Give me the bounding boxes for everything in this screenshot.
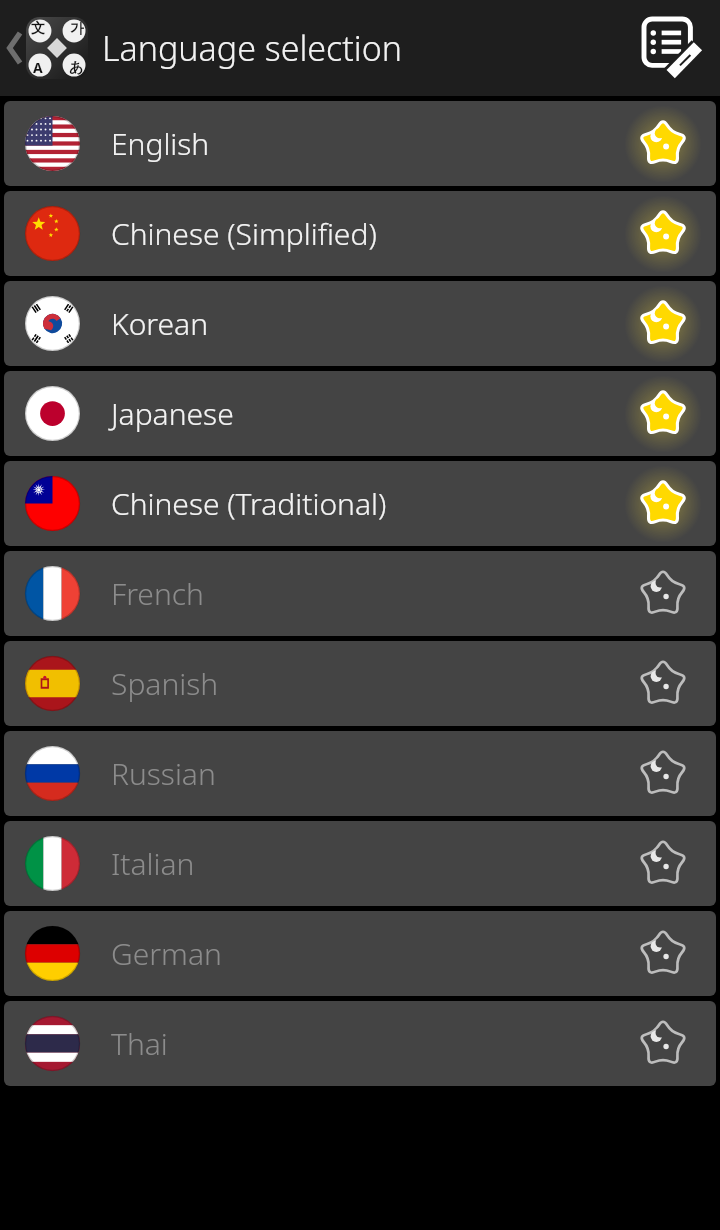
staticText: あ [69,59,84,77]
other: Favorite off [635,1016,716,1072]
button[interactable]: Spanish [4,641,716,726]
button[interactable]: Edit list [626,3,720,93]
staticText: Language selection [102,25,626,71]
staticText: Japanese [111,393,635,434]
other: Favorite on [635,296,716,352]
button[interactable]: Russian [4,731,716,816]
button[interactable]: Korean [4,281,716,366]
other: Favorite off [635,656,716,712]
other: Favorite on [635,116,716,172]
button[interactable]: French [4,551,716,636]
staticText: Spanish [111,663,635,704]
staticText: 가 [70,20,84,38]
other: Favorite off [635,746,716,802]
staticText: Thai [111,1023,635,1064]
staticText: Korean [111,303,635,344]
staticText: Chinese (Simplified) [111,213,635,254]
other: Favorite on [635,386,716,442]
button[interactable]: Back [0,9,92,87]
button[interactable]: Chinese (Traditional) [4,461,716,546]
other: Favorite off [635,566,716,622]
staticText: Chinese (Traditional) [111,483,635,524]
other: Favorite on [635,476,716,532]
button[interactable]: Chinese (Simplified) [4,191,716,276]
staticText: Russian [111,753,635,794]
button[interactable]: Thai [4,1001,716,1086]
other: Favorite off [635,836,716,892]
button[interactable]: English [4,101,716,186]
staticText: English [111,123,635,164]
other: Favorite off [635,926,716,982]
staticText: 文 [31,20,45,38]
button[interactable]: Japanese [4,371,716,456]
other: Favorite on [635,206,716,262]
button[interactable]: Italian [4,821,716,906]
staticText: French [111,573,635,614]
staticText: German [111,933,635,974]
button[interactable]: German [4,911,716,996]
staticText: Italian [111,843,635,884]
staticText: A [33,58,43,77]
